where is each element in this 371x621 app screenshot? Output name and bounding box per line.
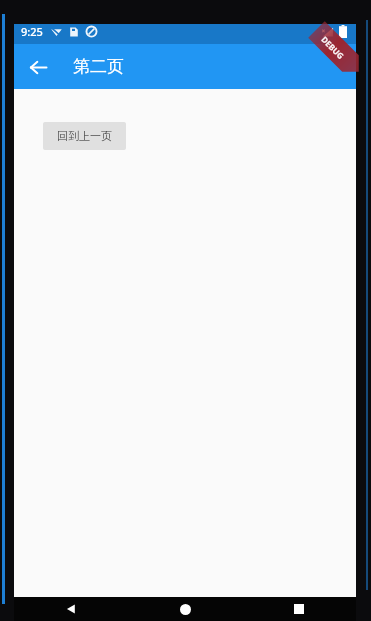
staticText: 第二页 (73, 56, 124, 77)
staticText: 9:25 (21, 24, 43, 39)
staticText: 回到上一页 (57, 129, 112, 143)
button[interactable]: 回到上一页 (43, 122, 126, 150)
button[interactable]: Back (14, 597, 128, 621)
button[interactable]: Back (19, 48, 57, 86)
button[interactable]: Home (128, 597, 242, 621)
button[interactable]: Recent apps (242, 597, 356, 621)
staticText: DEBUG (319, 34, 347, 61)
